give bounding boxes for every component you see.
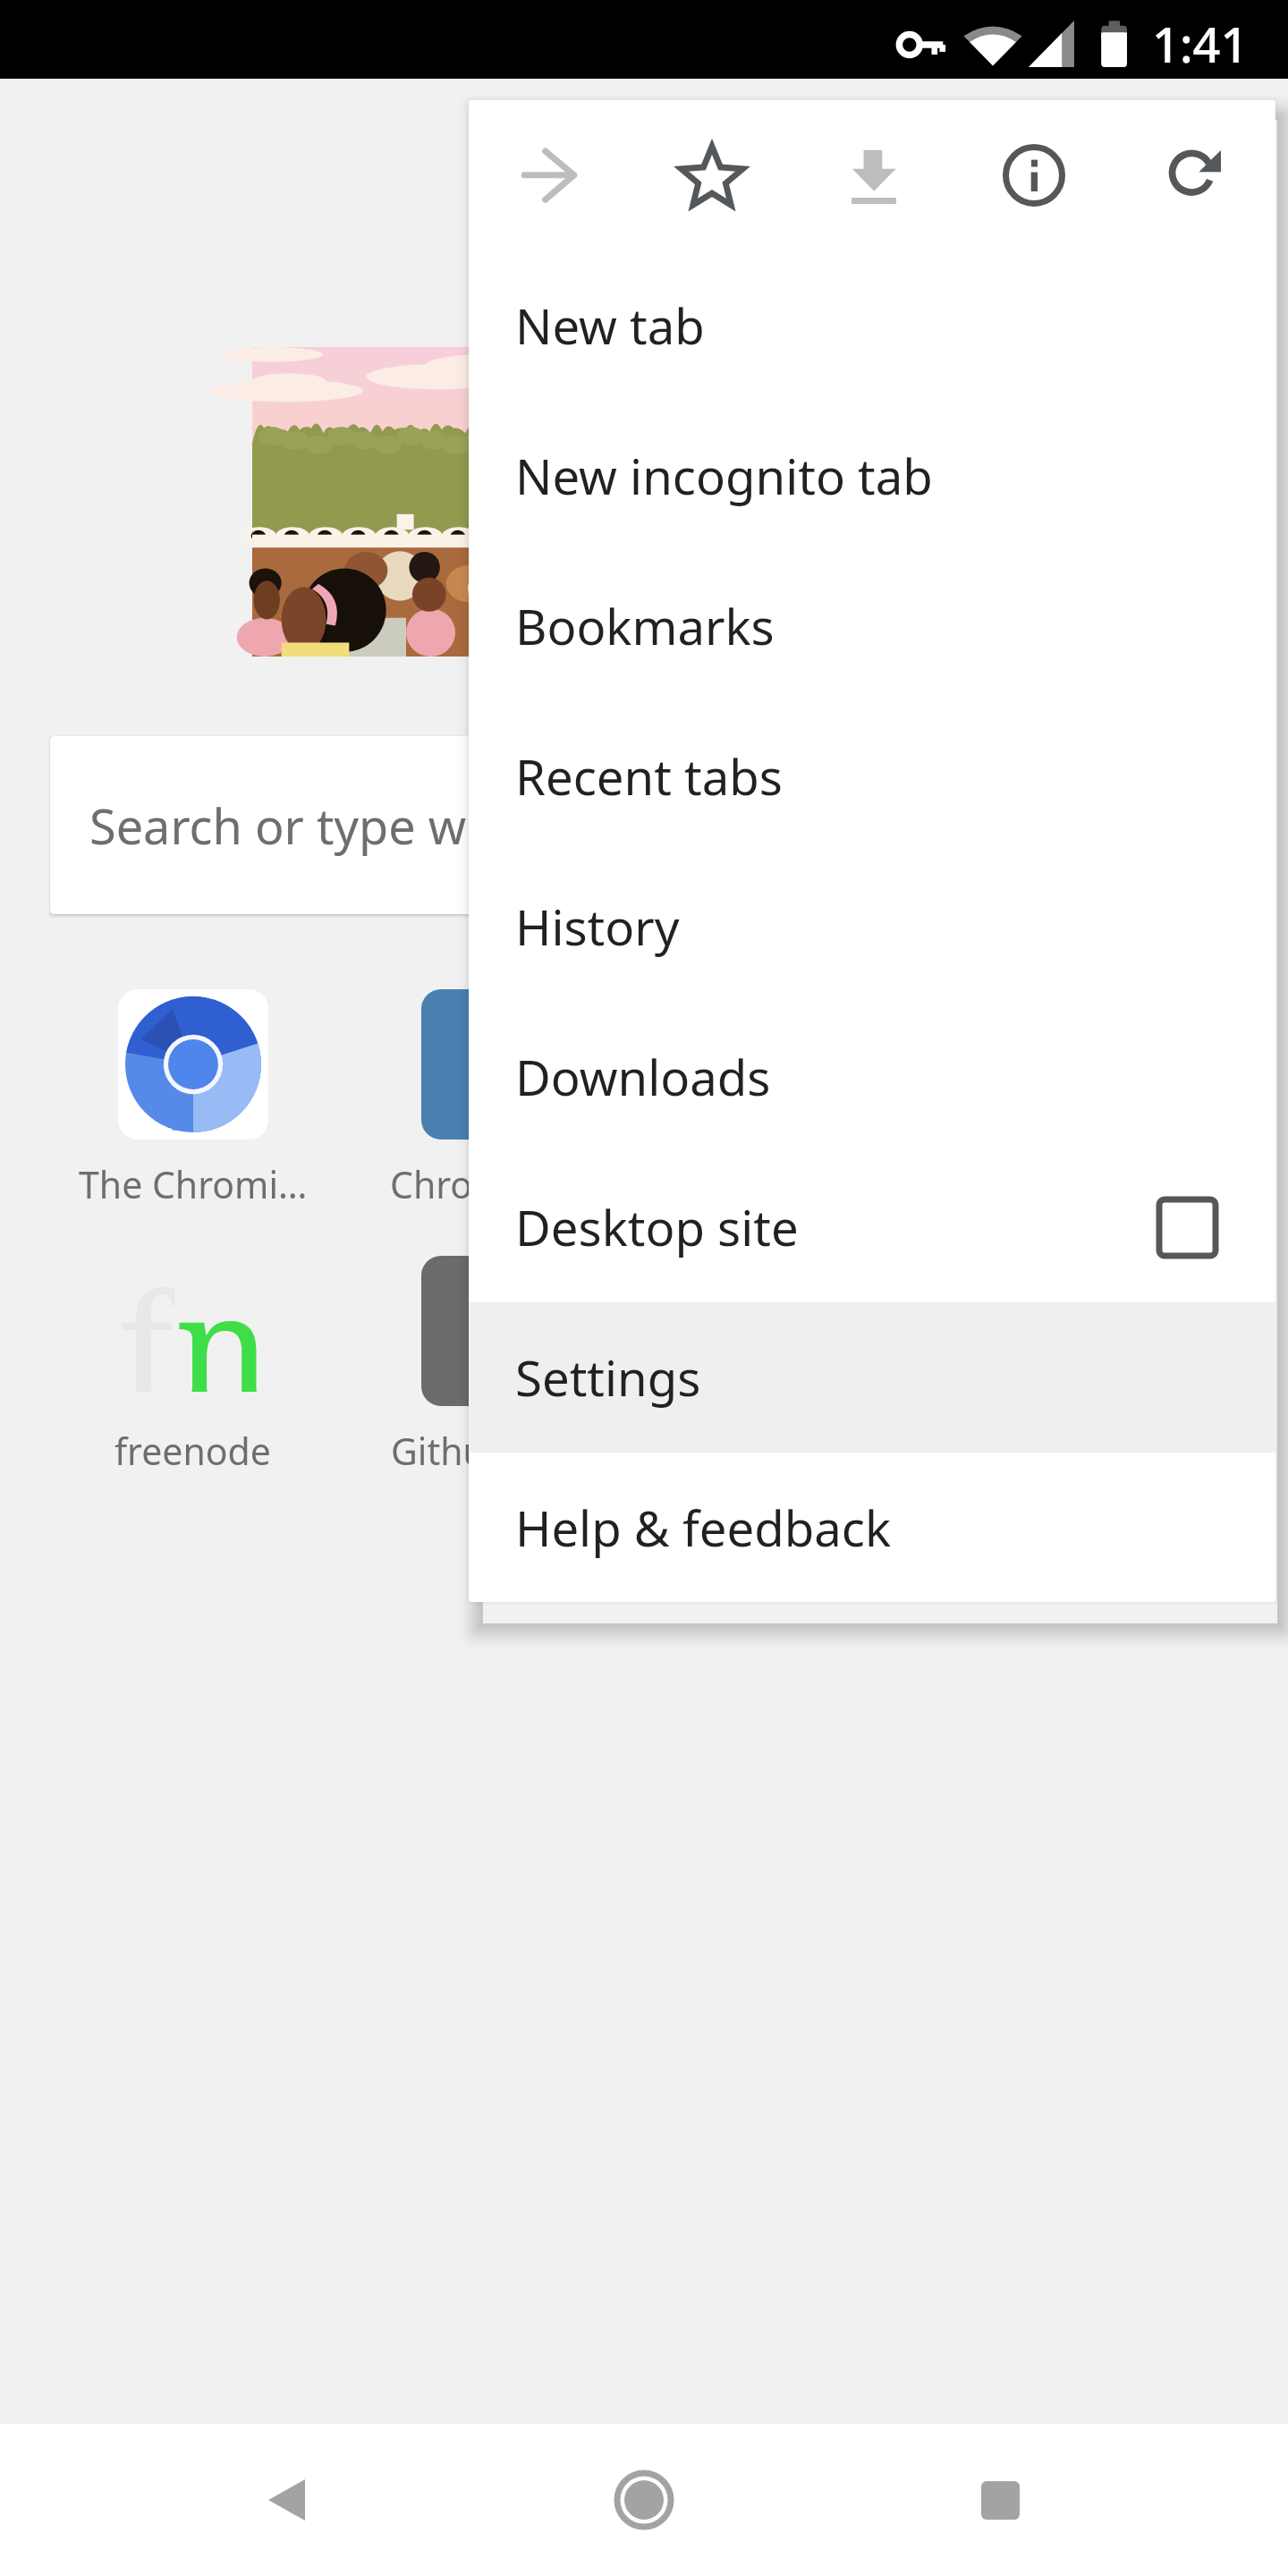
staticText: Help & feedback [515, 1495, 892, 1561]
button[interactable]: Recent apps [950, 2450, 1050, 2550]
staticText: Recent tabs [515, 743, 783, 809]
staticText: 1:41 [1152, 11, 1249, 77]
button[interactable]: Page info [953, 100, 1114, 250]
staticText: Bookmarks [515, 593, 775, 659]
staticText: G [469, 1280, 524, 1382]
button[interactable]: The Chromi… [41, 989, 344, 1209]
staticText: f [118, 1256, 174, 1392]
staticText: I [1090, 1280, 1116, 1382]
button[interactable]: Forward [469, 100, 631, 250]
button[interactable]: Bookmarks [469, 551, 1275, 701]
staticText: Desktop site [515, 1194, 799, 1260]
button[interactable]: C [648, 989, 951, 1209]
button[interactable]: C [951, 989, 1254, 1209]
staticText: History [515, 894, 680, 960]
button[interactable]: Settings [469, 1302, 1275, 1453]
staticText: New tab [515, 292, 705, 359]
staticText: Chrome Re… [993, 1159, 1213, 1209]
button[interactable]: Bookmark [631, 100, 792, 250]
button[interactable]: Search or type web address [50, 736, 1238, 914]
staticText: Settings [515, 1344, 701, 1411]
button[interactable]: G [344, 1256, 648, 1476]
button[interactable]: Help & feedback [469, 1453, 1275, 1602]
staticText: Gerrit Cod… [696, 1426, 903, 1476]
staticText: Issues - c… [1010, 1426, 1196, 1476]
staticText: G [772, 1280, 827, 1382]
button[interactable]: f [41, 1256, 344, 1476]
staticText: n [174, 1256, 268, 1392]
button[interactable]: History [469, 852, 1275, 1002]
staticText: Github/chr… [391, 1426, 601, 1476]
staticText: C [472, 1013, 521, 1115]
button[interactable]: Downloads [469, 1002, 1275, 1152]
staticText: freenode [114, 1426, 271, 1476]
button[interactable]: Desktop site [469, 1152, 1275, 1302]
button[interactable]: Recent tabs [469, 701, 1275, 852]
staticText: The Chromi… [79, 1159, 308, 1209]
staticText: New incognito tab [515, 443, 933, 509]
button[interactable]: Home [594, 2450, 694, 2550]
button[interactable]: Back [236, 2450, 336, 2550]
button[interactable]: New incognito tab [469, 401, 1275, 551]
staticText: Downloads [515, 1044, 771, 1110]
button[interactable]: Download page [792, 100, 953, 250]
button[interactable]: I [951, 1256, 1254, 1476]
button[interactable]: Reload [1114, 100, 1275, 250]
button[interactable]: New tab [469, 250, 1275, 401]
staticText: Search or type web address [89, 792, 715, 859]
staticText: Chromium… [390, 1159, 603, 1209]
button[interactable]: C [344, 989, 648, 1209]
button[interactable]: G [648, 1256, 951, 1476]
